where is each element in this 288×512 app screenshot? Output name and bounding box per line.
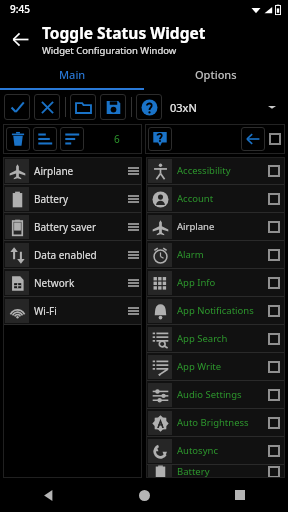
- button[interactable]: Select Account: [268, 193, 280, 205]
- staticText: Wi-Fi: [34, 304, 128, 318]
- staticText: Accessibility: [177, 164, 268, 177]
- staticText: Airplane: [34, 164, 128, 178]
- button[interactable]: Select App Write: [268, 361, 280, 373]
- button[interactable]: Alarm: [146, 241, 285, 268]
- staticText: Main: [59, 67, 86, 82]
- button[interactable]: Battery: [3, 185, 142, 212]
- staticText: Alarm: [177, 248, 268, 261]
- button[interactable]: Select Audio Settings: [268, 389, 280, 401]
- button[interactable]: App Info: [146, 269, 285, 296]
- staticText: Autosync: [177, 444, 268, 457]
- button[interactable]: Audio Settings: [146, 381, 285, 408]
- staticText: App Notifications: [177, 304, 268, 317]
- button[interactable]: Wi-Fi: [3, 297, 142, 324]
- staticText: App Info: [177, 276, 268, 289]
- staticText: App Search: [177, 332, 268, 345]
- button[interactable]: Account: [146, 185, 285, 212]
- button[interactable]: Align list left: [60, 127, 84, 151]
- button[interactable]: Align list: [33, 127, 57, 151]
- button[interactable]: Select Airplane: [268, 221, 280, 233]
- staticText: Audio Settings: [177, 388, 268, 401]
- button[interactable]: App Notifications: [146, 297, 285, 324]
- button[interactable]: Open: [70, 94, 96, 120]
- button[interactable]: Select Battery: [268, 466, 280, 478]
- button[interactable]: Select Autosync: [268, 445, 280, 457]
- staticText: Data enabled: [34, 248, 128, 262]
- staticText: 6: [114, 132, 120, 146]
- button[interactable]: Confirm: [4, 94, 30, 120]
- staticText: Battery: [34, 192, 128, 206]
- button[interactable]: Network: [3, 269, 142, 296]
- button[interactable]: Main: [0, 60, 144, 88]
- button[interactable]: Info: [148, 127, 172, 151]
- button[interactable]: Auto Brightness: [146, 409, 285, 436]
- button[interactable]: Back: [0, 478, 96, 512]
- button[interactable]: Cancel: [34, 94, 60, 120]
- button[interactable]: App Search: [146, 325, 285, 352]
- button[interactable]: Recents: [192, 478, 288, 512]
- button[interactable]: Select Auto Brightness: [268, 417, 280, 429]
- button[interactable]: Move left: [241, 127, 265, 151]
- button[interactable]: Select Alarm: [268, 249, 280, 261]
- button[interactable]: Accessibility: [146, 157, 285, 184]
- button[interactable]: Battery: [146, 465, 285, 478]
- staticText: Toggle Status Widget: [42, 22, 206, 43]
- button[interactable]: Select Accessibility: [268, 165, 280, 177]
- staticText: Network: [34, 276, 128, 290]
- staticText: 9:45: [10, 2, 30, 16]
- button[interactable]: Options: [144, 60, 288, 88]
- staticText: 03xN: [170, 100, 197, 115]
- staticText: Battery saver: [34, 220, 128, 234]
- button[interactable]: Delete: [6, 127, 30, 151]
- button[interactable]: Autosync: [146, 437, 285, 464]
- button[interactable]: Home: [96, 478, 192, 512]
- staticText: Auto Brightness: [177, 416, 268, 429]
- button[interactable]: Save: [100, 94, 126, 120]
- button[interactable]: 03xN: [170, 90, 284, 124]
- button[interactable]: Select App Search: [268, 333, 280, 345]
- button[interactable]: App Write: [146, 353, 285, 380]
- button[interactable]: Select App Info: [268, 277, 280, 289]
- button[interactable]: Help: [136, 94, 162, 120]
- staticText: Airplane: [177, 220, 268, 233]
- button[interactable]: Airplane: [146, 213, 285, 240]
- staticText: App Write: [177, 360, 268, 373]
- staticText: Widget Configuration Window: [42, 44, 177, 57]
- button[interactable]: Select App Notifications: [268, 305, 280, 317]
- staticText: Account: [177, 192, 268, 205]
- button[interactable]: Data enabled: [3, 241, 142, 268]
- staticText: Battery: [177, 465, 268, 478]
- button[interactable]: Battery saver: [3, 213, 142, 240]
- button[interactable]: Airplane: [3, 157, 142, 184]
- button[interactable]: Select all: [269, 133, 281, 145]
- button[interactable]: Back: [0, 19, 40, 59]
- staticText: Options: [195, 67, 237, 82]
